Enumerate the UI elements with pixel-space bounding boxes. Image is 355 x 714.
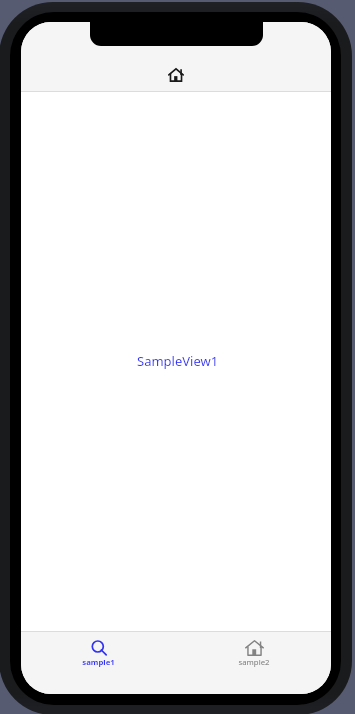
staticText: SampleView1 bbox=[137, 352, 219, 370]
button[interactable]: sample1 bbox=[21, 632, 176, 694]
button[interactable]: sample2 bbox=[176, 632, 331, 694]
button[interactable]: Home bbox=[162, 63, 190, 87]
staticText: sample1 bbox=[82, 657, 115, 668]
staticText: sample2 bbox=[238, 657, 270, 668]
